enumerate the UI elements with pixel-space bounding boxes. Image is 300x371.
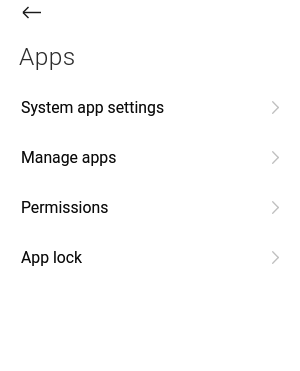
button[interactable]: Manage apps: [0, 132, 300, 182]
staticText: Permissions: [21, 198, 109, 217]
staticText: System app settings: [21, 98, 165, 117]
staticText: Apps: [19, 42, 76, 71]
staticText: App lock: [21, 248, 83, 267]
staticText: App lock: [21, 248, 83, 267]
button[interactable]: System app settings: [0, 82, 300, 132]
staticText: Manage apps: [21, 148, 117, 167]
staticText: System app settings: [21, 98, 165, 117]
button[interactable]: App lock: [0, 232, 300, 282]
staticText: Permissions: [21, 198, 109, 217]
button[interactable]: Permissions: [0, 182, 300, 232]
staticText: Apps: [19, 42, 76, 71]
staticText: Manage apps: [21, 148, 117, 167]
button[interactable]: Navigate up: [13, 0, 49, 36]
